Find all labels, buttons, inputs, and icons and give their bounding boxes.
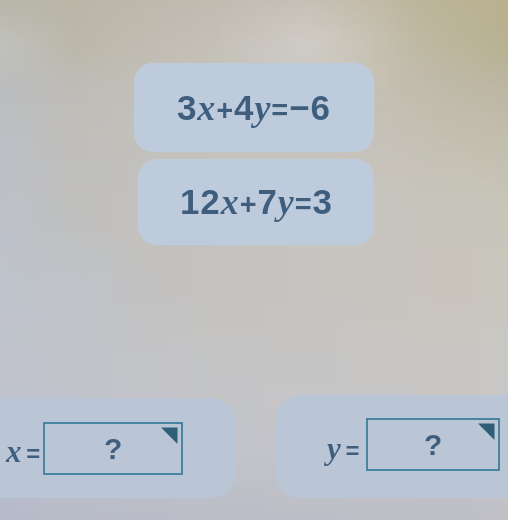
staticText: ? xyxy=(104,432,123,466)
staticText: x = xyxy=(6,434,41,468)
button[interactable]: Answer for y xyxy=(367,419,499,470)
button[interactable]: 12x+7y=3 xyxy=(138,159,374,245)
button[interactable]: 3x+4y=−6 xyxy=(134,63,374,152)
staticText: 12x+7y=3 xyxy=(180,182,333,222)
staticText: y = xyxy=(327,431,360,465)
staticText: 3x+4y=−6 xyxy=(177,88,331,128)
button[interactable]: Answer for x xyxy=(44,423,182,474)
staticText: ? xyxy=(424,428,443,462)
